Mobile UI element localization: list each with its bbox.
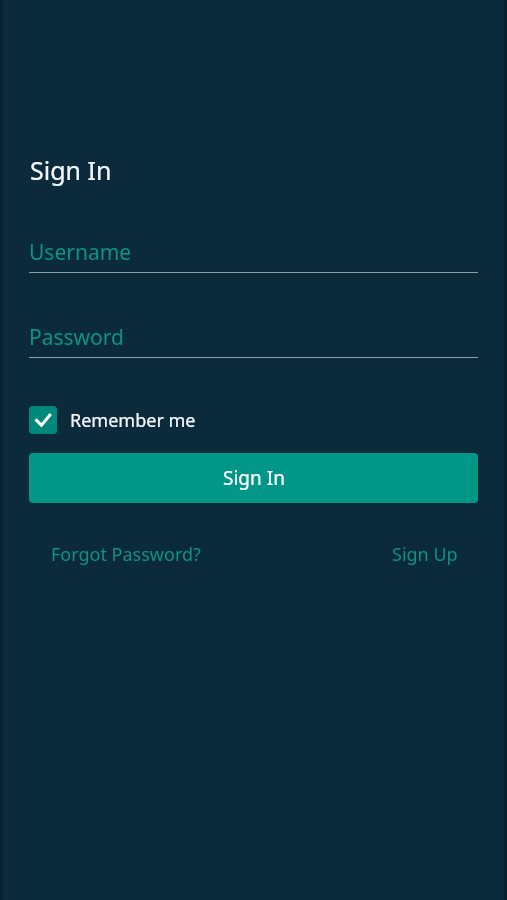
staticText: Sign Up <box>392 542 458 567</box>
staticText: Sign In <box>30 153 112 187</box>
staticText: Remember me <box>70 408 196 433</box>
button[interactable]: Sign In <box>29 453 478 503</box>
staticText: Password <box>29 323 124 352</box>
staticText: Username <box>29 238 132 267</box>
staticText: Sign In <box>223 465 285 491</box>
button[interactable]: Sign Up <box>372 536 478 573</box>
staticText: Forgot Password? <box>51 542 201 567</box>
button[interactable]: Remember me <box>29 404 204 436</box>
button[interactable]: Forgot Password? <box>29 536 223 573</box>
button[interactable]: Password <box>29 323 478 358</box>
button[interactable]: Username <box>29 238 478 273</box>
